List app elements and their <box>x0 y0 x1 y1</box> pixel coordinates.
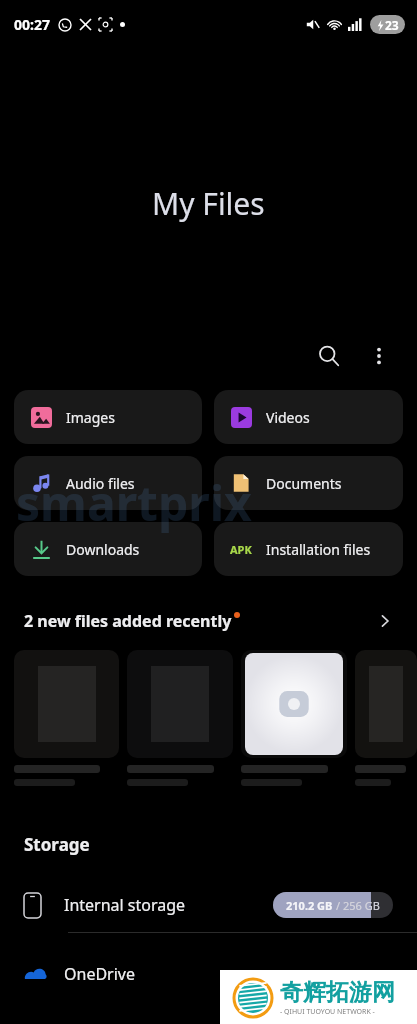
button[interactable]: Search <box>305 332 353 380</box>
button[interactable]: Documents <box>214 456 403 510</box>
button[interactable]: 2 new files added recently <box>0 602 417 640</box>
staticText: 奇辉拓游网 <box>280 978 395 1007</box>
staticText: / 256 GB <box>336 898 380 913</box>
staticText: Documents <box>266 474 342 493</box>
staticText: Internal storage <box>64 894 186 916</box>
staticText: 210.2 GB <box>286 898 336 913</box>
button[interactable]: More options <box>355 332 403 380</box>
staticText: Videos <box>266 408 310 427</box>
button[interactable]: Internal storage <box>0 883 417 927</box>
staticText: Images <box>66 408 115 427</box>
staticText: smartprix <box>16 470 252 535</box>
staticText: My Files <box>152 183 265 224</box>
button[interactable] <box>0 650 417 805</box>
staticText: Storage <box>24 833 90 856</box>
button[interactable]: OneDrive <box>0 952 417 996</box>
staticText: 2 new files added recently <box>24 610 232 632</box>
staticText: 00:27 <box>14 15 50 34</box>
staticText: APK <box>230 542 252 557</box>
staticText: OneDrive <box>64 963 135 985</box>
button[interactable]: Images <box>14 390 202 444</box>
staticText: 23 <box>385 17 399 33</box>
staticText: Installation files <box>266 540 371 559</box>
button[interactable]: Downloads <box>14 522 202 576</box>
staticText: Audio files <box>66 474 135 493</box>
button[interactable]: Videos <box>214 390 403 444</box>
button[interactable]: Audio files <box>14 456 202 510</box>
button[interactable]: APK <box>214 522 403 576</box>
staticText: - QIHUI TUOYOU NETWORK - <box>280 1007 375 1017</box>
staticText: Downloads <box>66 540 140 559</box>
